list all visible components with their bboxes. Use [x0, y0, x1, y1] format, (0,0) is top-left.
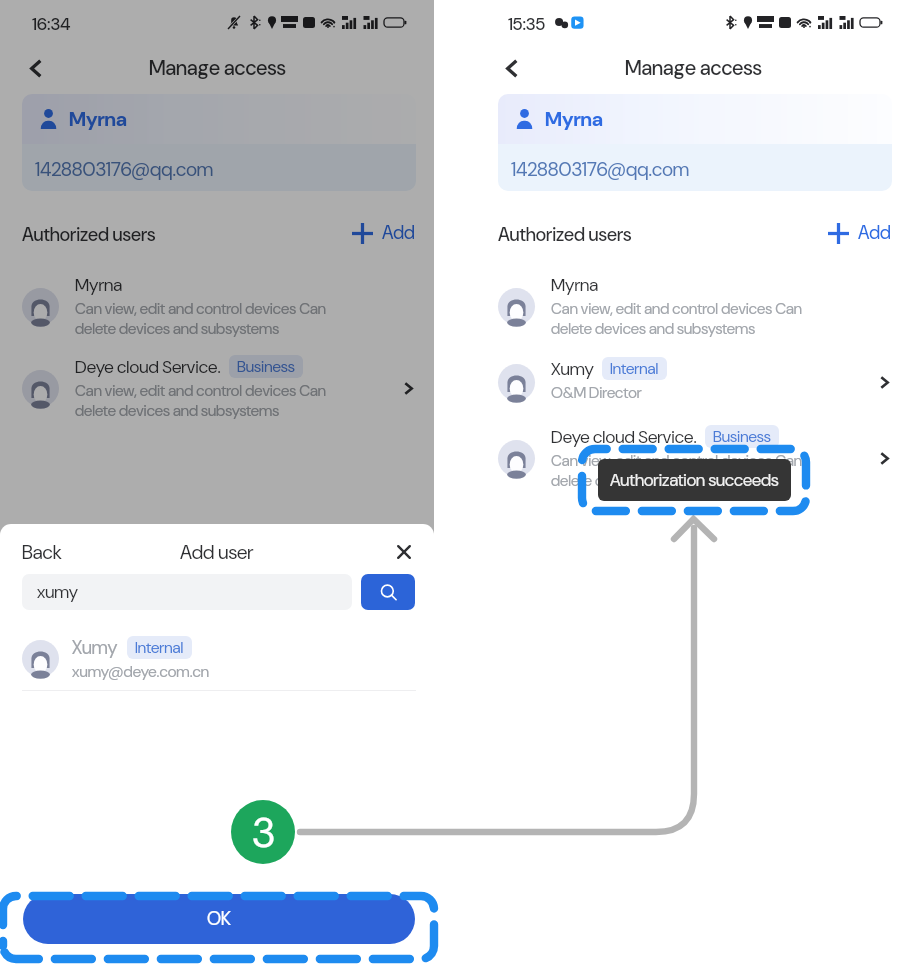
staticText: Xumy	[72, 635, 118, 659]
staticText: Manage access	[625, 55, 762, 82]
staticText: 15:35	[508, 13, 546, 36]
staticText: Authorized users	[498, 223, 632, 247]
staticText: Deye cloud Service.	[551, 425, 697, 448]
staticText: Can view, edit and control devices Can d…	[551, 299, 802, 339]
button[interactable]: Myrna	[498, 94, 892, 191]
staticText: Myrna	[75, 273, 123, 296]
staticText: Can view, edit and control devices Can d…	[75, 299, 326, 339]
button[interactable]: Back	[22, 540, 62, 565]
button[interactable]: Xumy	[498, 354, 892, 410]
button[interactable]: Deye cloud Service.	[498, 422, 892, 494]
staticText: Add	[382, 221, 415, 245]
staticText: O&M Director	[551, 383, 642, 403]
staticText: Manage access	[149, 55, 286, 82]
staticText: Myrna	[545, 106, 603, 132]
button[interactable]: Close	[385, 533, 423, 571]
button[interactable]: Myrna	[498, 270, 892, 342]
staticText: Myrna	[551, 273, 599, 296]
staticText: xumy@deye.com.cn	[72, 661, 210, 682]
staticText: Authorized users	[22, 223, 156, 247]
staticText: Add	[858, 221, 891, 245]
staticText: xumy	[37, 581, 79, 604]
staticText: 16:34	[32, 13, 71, 36]
staticText: Add user	[180, 540, 254, 565]
button[interactable]: OK	[23, 894, 415, 944]
staticText: Can view, edit and control devices Can d…	[75, 381, 326, 421]
staticText: Business	[713, 426, 771, 447]
staticText: Business	[237, 356, 295, 377]
staticText: 3	[252, 805, 275, 860]
button[interactable]: Xumy	[0, 629, 434, 687]
button[interactable]: xumy	[22, 574, 352, 610]
staticText: Can view, edit and control devices Can d…	[551, 451, 802, 491]
button[interactable]: Back	[18, 50, 54, 86]
staticText: 1428803176@qq.com	[511, 157, 690, 182]
button[interactable]: Search	[361, 574, 415, 610]
staticText: 1428803176@qq.com	[35, 157, 214, 182]
button[interactable]: Myrna	[22, 270, 416, 342]
button[interactable]: Deye cloud Service.	[22, 352, 416, 424]
staticText: Xumy	[551, 357, 594, 380]
button[interactable]: Add	[828, 219, 894, 247]
staticText: Back	[22, 540, 62, 565]
staticText: OK	[207, 907, 231, 931]
button[interactable]: Myrna	[22, 94, 416, 191]
staticText: Deye cloud Service.	[75, 355, 221, 378]
staticText: Myrna	[69, 106, 127, 132]
staticText: Authorization succeeds	[610, 469, 779, 491]
staticText: Internal	[610, 358, 659, 379]
button[interactable]: Back	[494, 50, 530, 86]
staticText: Internal	[135, 637, 184, 658]
button[interactable]: Add	[352, 219, 418, 247]
